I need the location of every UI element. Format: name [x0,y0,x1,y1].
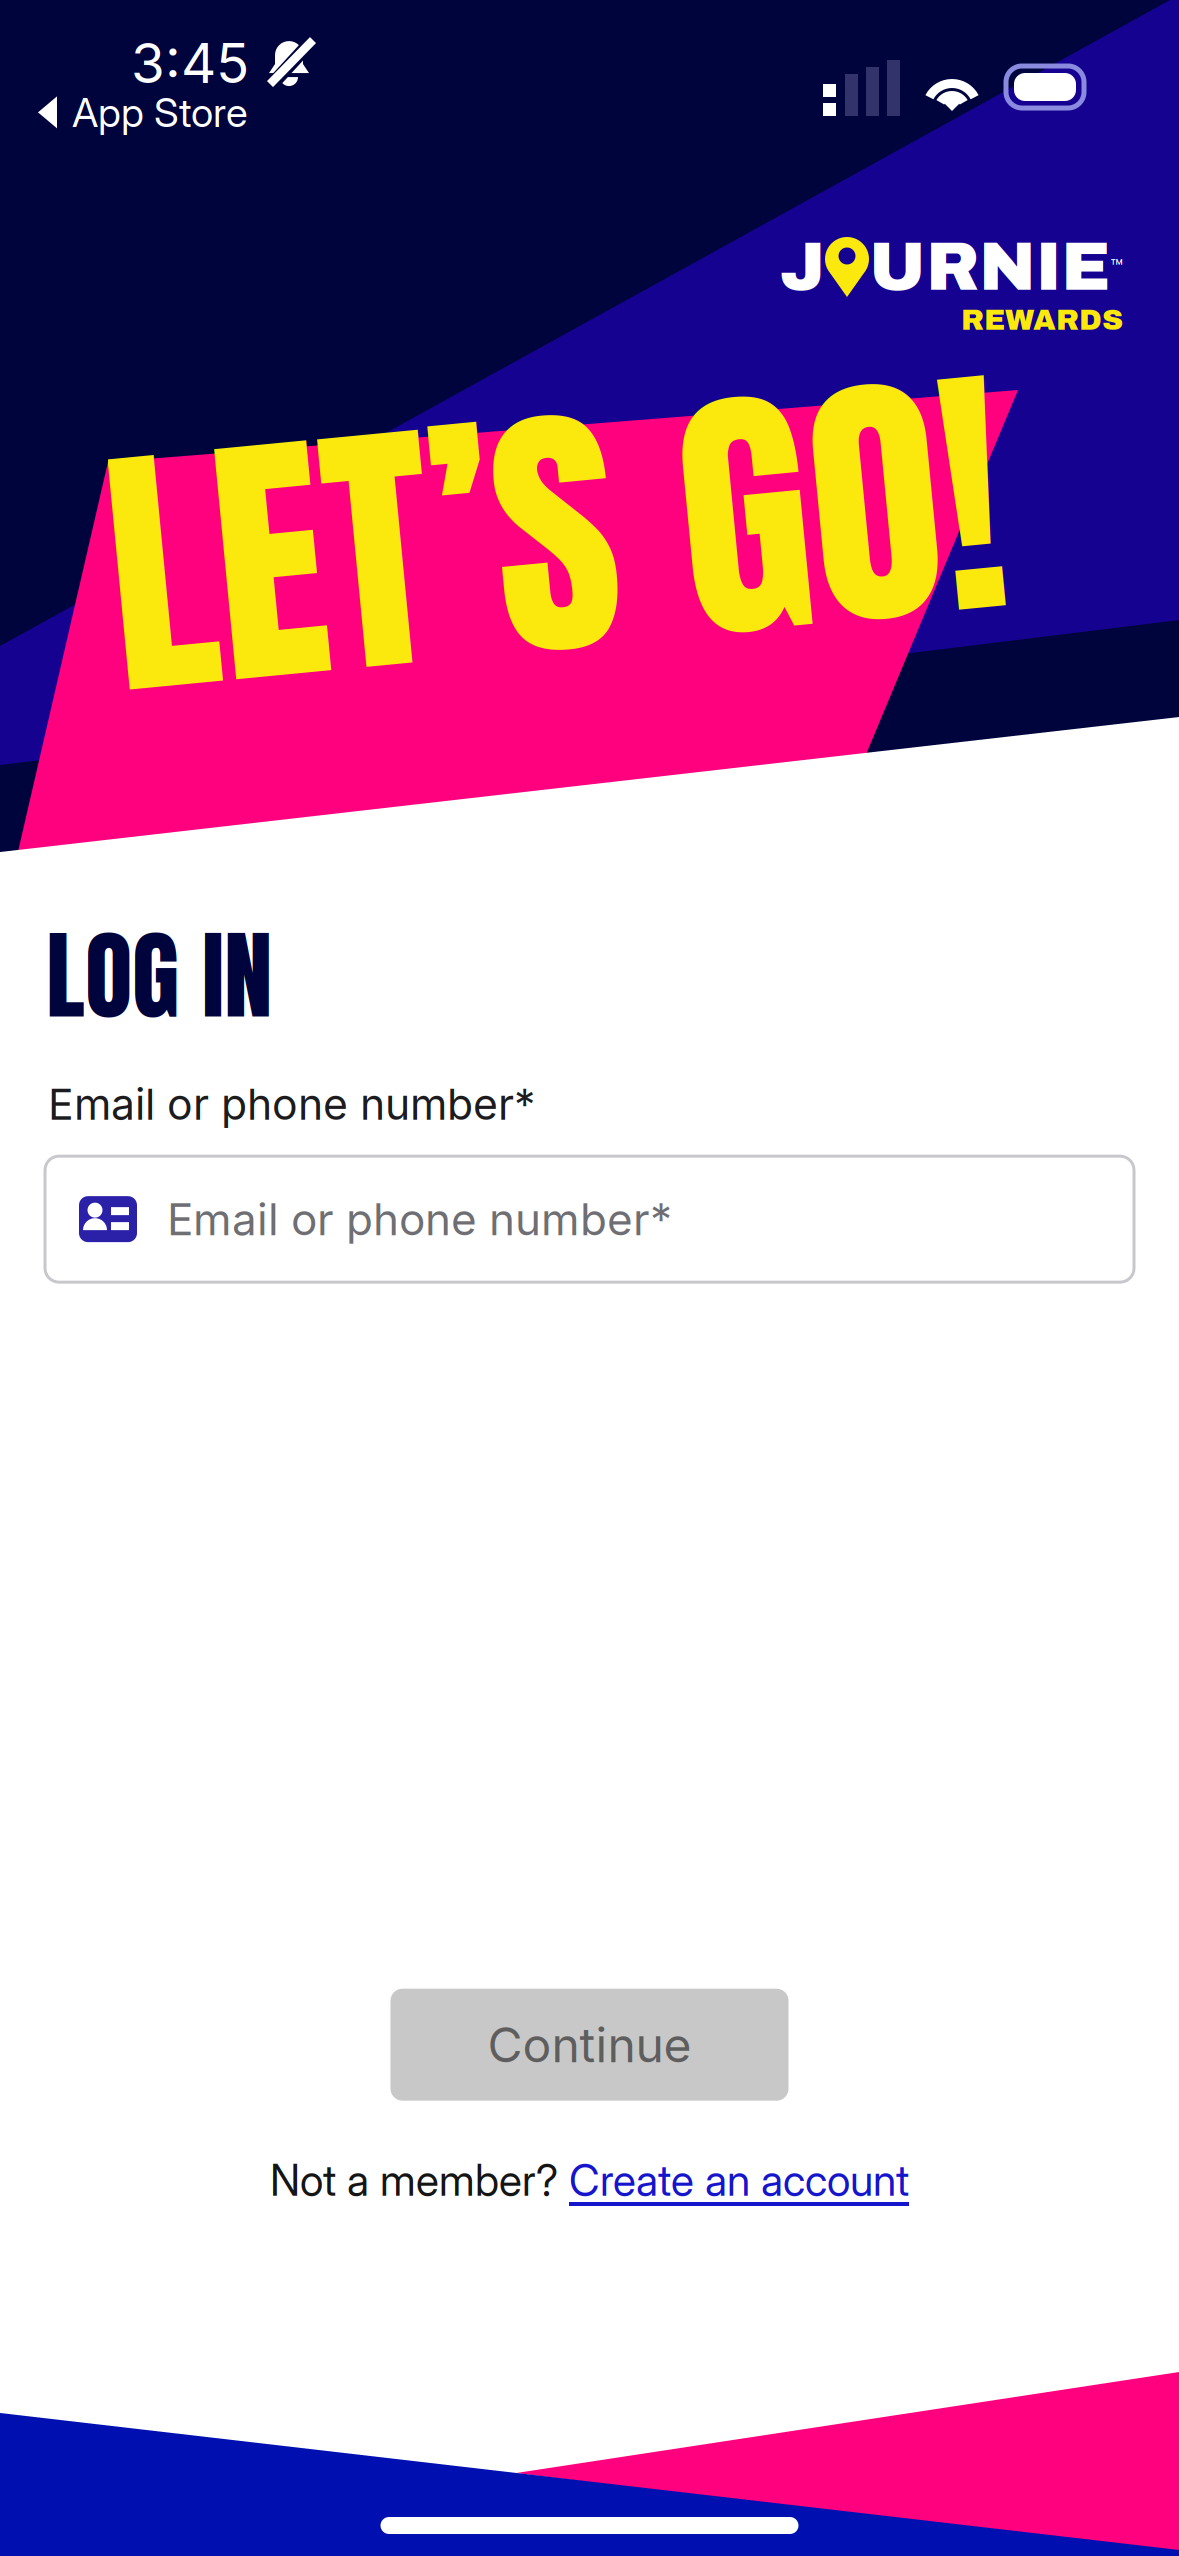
staticText: 3:45 [131,30,249,96]
button[interactable]: Not a member? [270,2155,909,2206]
staticText: LOG IN [46,902,272,1048]
staticText: Email or phone number* [48,1078,535,1130]
staticText: Not a member? [270,2155,569,2206]
staticText: Continue [487,2016,691,2074]
staticText: LET’S GO! [106,331,1004,737]
staticText: Create an account [569,2155,909,2206]
staticText: URNIE [869,230,1110,304]
staticText: Email or phone number* [167,1192,672,1246]
staticText: ™ [1110,254,1123,280]
button[interactable]: Continue [390,1989,788,2101]
staticText: J [780,230,825,304]
staticText: App Store [72,88,248,136]
staticText: REWARDS [961,304,1123,336]
